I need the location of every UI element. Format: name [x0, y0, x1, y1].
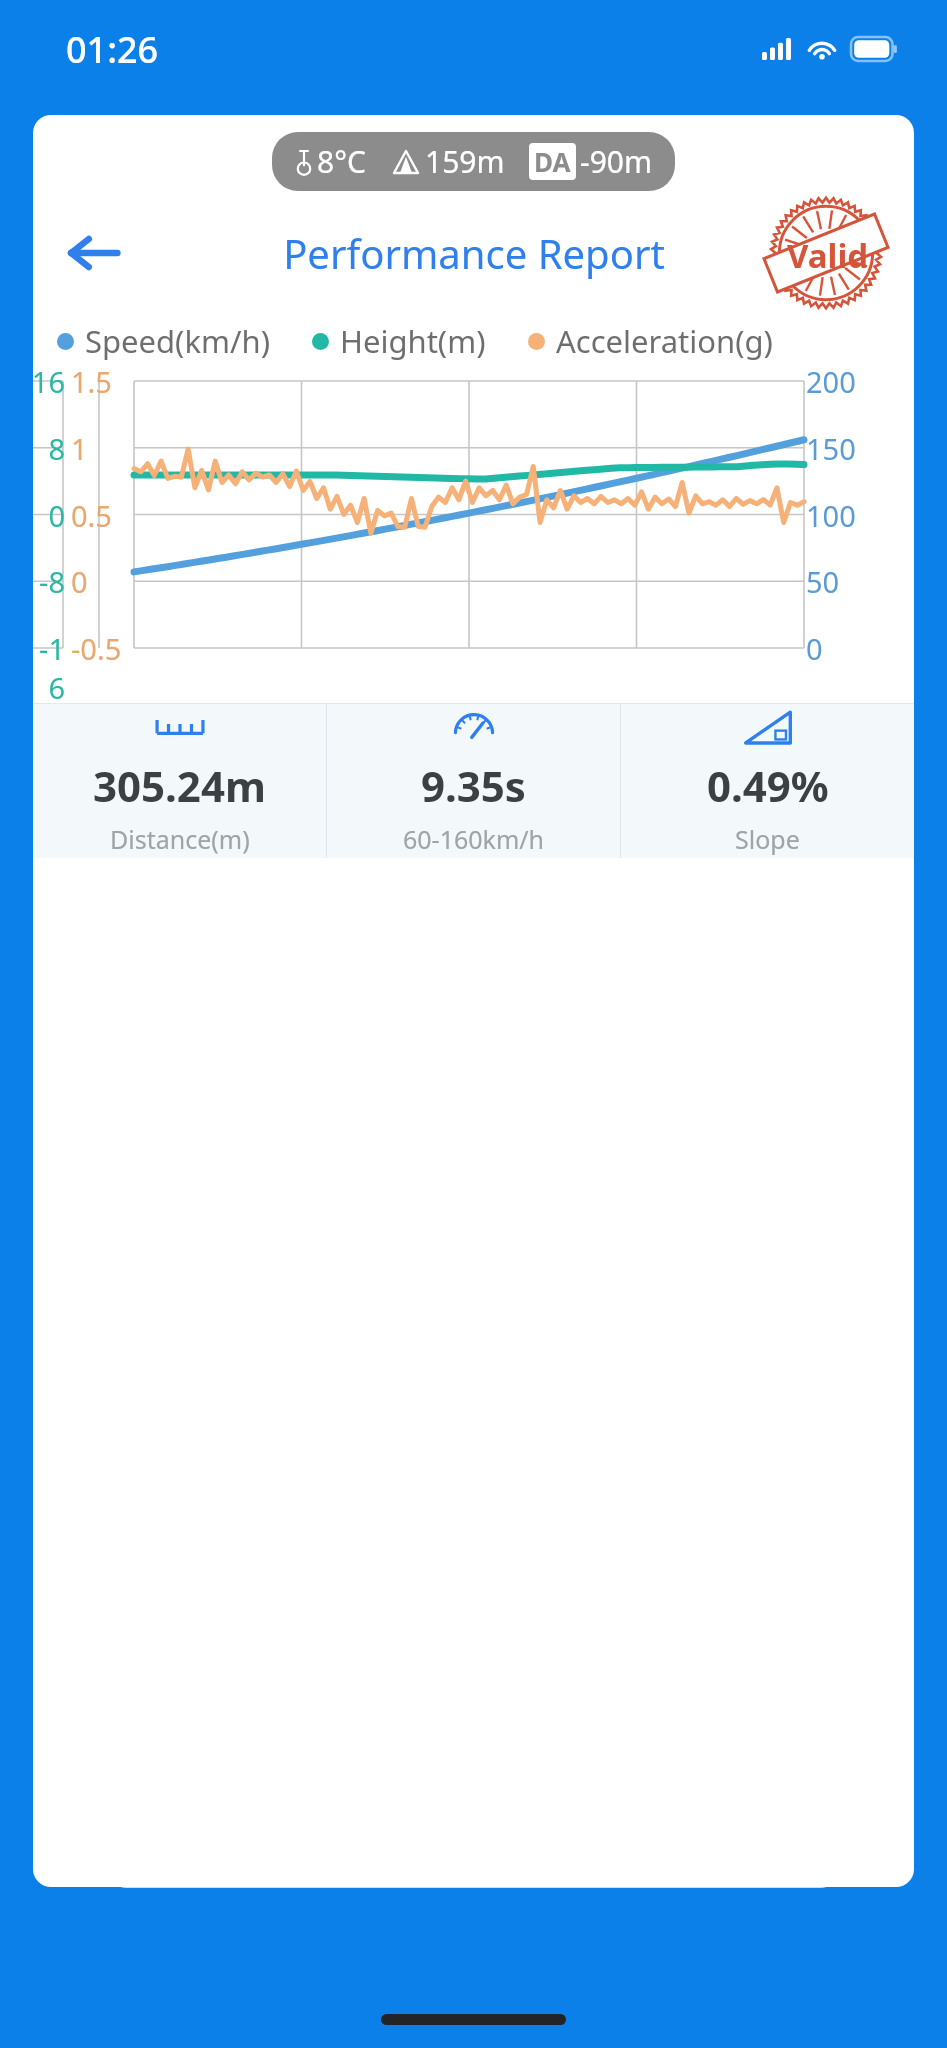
- staticText: 0: [806, 629, 886, 668]
- staticText: 0.5: [71, 496, 129, 535]
- button[interactable]: 0.49%: [621, 703, 914, 858]
- staticText: 159m: [425, 141, 505, 182]
- staticText: 150: [806, 429, 886, 468]
- button[interactable]: 305.24m: [33, 703, 326, 858]
- staticText: Height(m): [340, 320, 486, 362]
- staticText: Slope: [735, 822, 800, 856]
- button[interactable]: Acceleration(g): [528, 320, 773, 362]
- staticText: 60-160km/h: [403, 822, 545, 856]
- staticText: 8: [33, 429, 65, 468]
- button[interactable]: Back: [53, 212, 135, 294]
- button[interactable]: Valid stamp: [756, 193, 896, 313]
- button[interactable]: 8°C: [294, 141, 653, 182]
- staticText: 9.35s: [421, 757, 526, 814]
- staticText: 50: [806, 562, 886, 601]
- staticText: 100: [806, 496, 886, 535]
- staticText: Acceleration(g): [556, 320, 773, 362]
- staticText: 01:26: [66, 25, 159, 74]
- staticText: 0.49%: [707, 757, 829, 814]
- staticText: Distance(m): [110, 822, 250, 856]
- button[interactable]: Height(m): [312, 320, 486, 362]
- staticText: 16: [33, 362, 65, 401]
- staticText: DA: [534, 144, 571, 179]
- staticText: -0.5: [71, 629, 129, 668]
- button[interactable]: Speed(km/h): [57, 320, 270, 362]
- staticText: -8: [33, 562, 65, 601]
- staticText: 8°C: [317, 141, 366, 182]
- staticText: Performance Report: [283, 226, 665, 280]
- staticText: 0: [71, 562, 129, 601]
- staticText: Speed(km/h): [85, 320, 270, 362]
- staticText: -90m: [580, 141, 653, 182]
- staticText: 1.5: [71, 362, 129, 401]
- staticText: 305.24m: [93, 757, 266, 814]
- staticText: -16: [33, 629, 65, 707]
- staticText: 200: [806, 362, 886, 401]
- button[interactable]: 9.35s: [327, 703, 620, 858]
- staticText: 0: [33, 496, 65, 535]
- staticText: Valid: [787, 233, 869, 278]
- staticText: 1: [71, 429, 129, 468]
